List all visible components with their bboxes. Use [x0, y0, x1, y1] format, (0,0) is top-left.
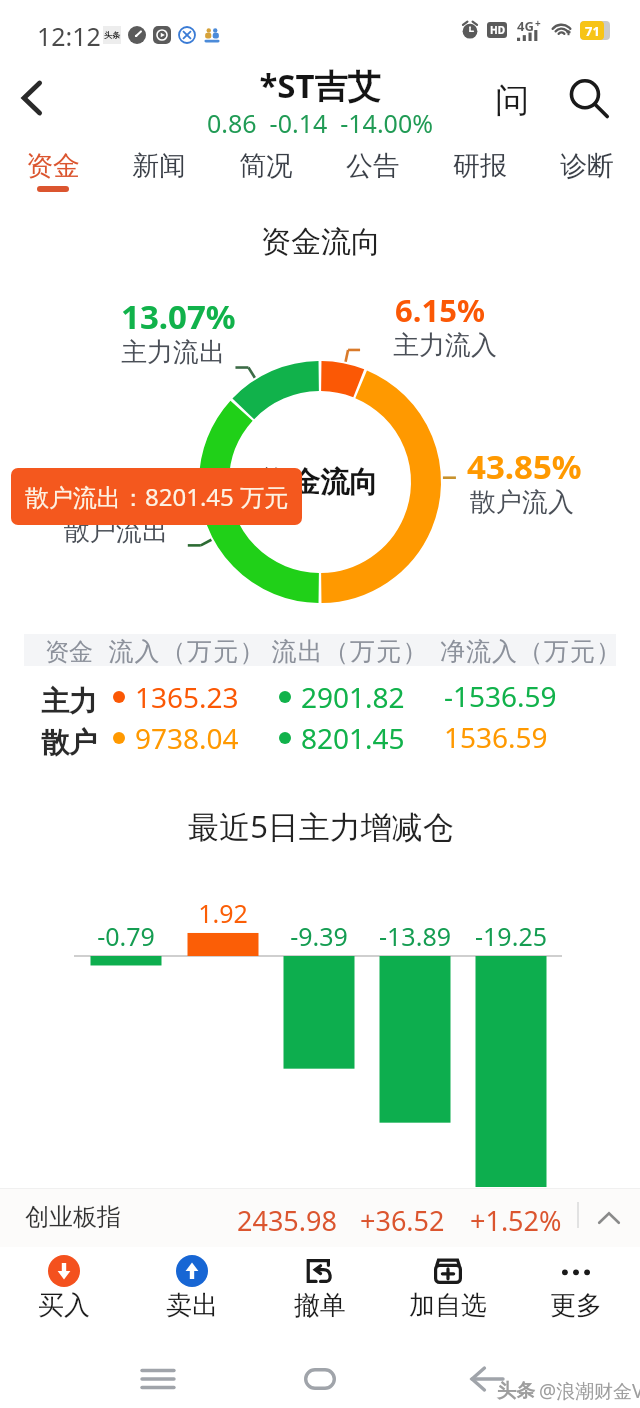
- staticText: 净流入（万元）: [401, 636, 640, 667]
- button[interactable]: 加自选: [384, 1247, 512, 1340]
- button[interactable]: 卖出: [128, 1247, 256, 1340]
- button[interactable]: 公告: [319, 144, 426, 206]
- staticText: 2901.82: [301, 678, 405, 716]
- staticText: 13.07%: [121, 294, 236, 339]
- staticText: 头条: [497, 1379, 535, 1403]
- staticText: *ST吉艾: [170, 63, 470, 108]
- staticText: 诊断: [560, 149, 614, 183]
- button[interactable]: 撤单: [256, 1247, 384, 1340]
- staticText: 新闻: [132, 149, 186, 183]
- staticText: 流出（万元）: [230, 636, 470, 667]
- button[interactable]: 诊断: [533, 144, 640, 206]
- staticText: 主力流出: [121, 336, 225, 369]
- staticText: 43.85%: [467, 444, 582, 489]
- button[interactable]: 买入: [0, 1247, 128, 1340]
- button[interactable]: Expand: [589, 1198, 629, 1238]
- staticText: 4G: [517, 17, 534, 35]
- button[interactable]: 新闻: [106, 144, 212, 206]
- staticText: +36.52: [360, 1202, 445, 1239]
- staticText: 散户流出: [64, 515, 168, 548]
- staticText: 1.92: [153, 896, 293, 930]
- staticText: 更多: [550, 1289, 602, 1322]
- staticText: 36.93%: [62, 474, 177, 519]
- button[interactable]: 问: [484, 72, 540, 128]
- staticText: -1536.59: [444, 677, 557, 715]
- button[interactable]: Back: [4, 70, 60, 126]
- button[interactable]: 更多: [512, 1247, 640, 1340]
- button[interactable]: 简况: [212, 144, 319, 206]
- button[interactable]: 研报: [426, 144, 533, 206]
- staticText: 买入: [38, 1289, 90, 1322]
- staticText: 公告: [346, 149, 400, 183]
- staticText: 撤单: [294, 1289, 346, 1322]
- staticText: 简况: [239, 149, 293, 183]
- button[interactable]: Back: [457, 1349, 517, 1408]
- staticText: 1365.23: [135, 678, 239, 716]
- staticText: 散户: [9, 725, 129, 760]
- staticText: 研报: [453, 149, 507, 183]
- staticText: 12:12: [37, 19, 101, 53]
- staticText: -0.79: [56, 919, 196, 953]
- staticText: 资金: [9, 637, 129, 667]
- staticText: 9738.04: [135, 719, 239, 757]
- staticText: 头条: [104, 30, 120, 40]
- button[interactable]: Recents: [128, 1349, 188, 1408]
- staticText: +: [535, 16, 541, 30]
- button[interactable]: Home: [290, 1349, 350, 1408]
- staticText: 加自选: [409, 1289, 487, 1322]
- staticText: 主力流入: [393, 329, 497, 362]
- staticText: 6.15%: [395, 289, 485, 331]
- button[interactable]: 资金: [0, 144, 106, 206]
- staticText: 71: [585, 22, 600, 40]
- staticText: 最近5日主力增减仓: [171, 805, 471, 847]
- staticText: +1.52%: [470, 1202, 562, 1239]
- staticText: 散户流出：8201.45 万元: [25, 480, 289, 513]
- staticText: -9.39: [249, 919, 389, 953]
- staticText: 创业板指: [25, 1202, 121, 1232]
- staticText: 资金流向: [171, 223, 471, 261]
- staticText: 资金流向: [262, 464, 378, 501]
- staticText: 卖出: [166, 1289, 218, 1322]
- staticText: 资金: [26, 149, 80, 183]
- staticText: HD: [490, 23, 505, 37]
- staticText: 主力: [9, 684, 129, 719]
- staticText: 2435.98: [237, 1202, 337, 1239]
- staticText: @浪潮财金V: [539, 1378, 640, 1404]
- staticText: 散户流入: [470, 486, 574, 519]
- staticText: -19.25: [441, 919, 581, 953]
- staticText: 1536.59: [444, 718, 548, 756]
- staticText: 0.86 -0.14 -14.00%: [170, 106, 470, 140]
- staticText: 问: [495, 79, 529, 122]
- staticText: 流入（万元）: [67, 636, 307, 667]
- staticText: -13.89: [345, 919, 485, 953]
- button[interactable]: Search: [560, 70, 616, 126]
- staticText: 8201.45: [301, 719, 405, 757]
